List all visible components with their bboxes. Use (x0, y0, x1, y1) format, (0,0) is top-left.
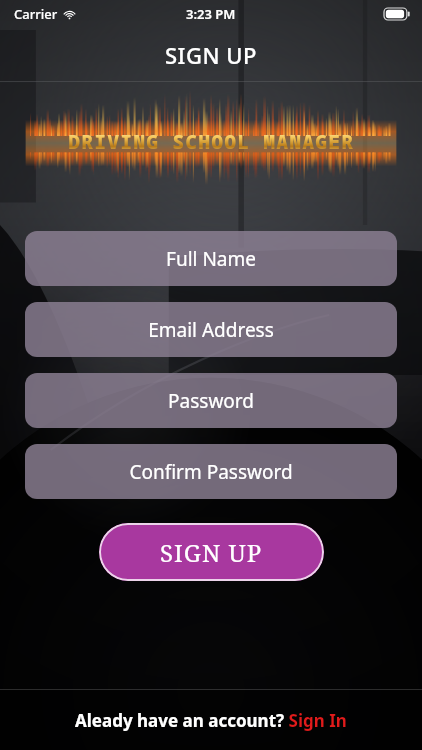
staticText: SIGN UP (165, 40, 257, 70)
staticText: DRIVING SCHOOL MANAGER (68, 129, 355, 155)
staticText: Password (168, 388, 254, 414)
button[interactable]: Confirm Password (25, 444, 397, 499)
staticText: Full Name (166, 246, 256, 272)
button[interactable]: Email Address (25, 302, 397, 357)
staticText: Carrier (14, 5, 58, 23)
staticText: SIGN UP (160, 536, 263, 569)
button[interactable]: SIGN UP (99, 523, 324, 581)
staticText: Aleady have an account? Sign In (75, 709, 347, 732)
staticText: Email Address (148, 317, 274, 343)
button[interactable]: Aleady have an account? Sign In (0, 690, 422, 750)
staticText: 3:23 PM (186, 5, 236, 23)
button[interactable]: Password (25, 373, 397, 428)
button[interactable]: Full Name (25, 231, 397, 286)
staticText: Confirm Password (129, 459, 293, 485)
